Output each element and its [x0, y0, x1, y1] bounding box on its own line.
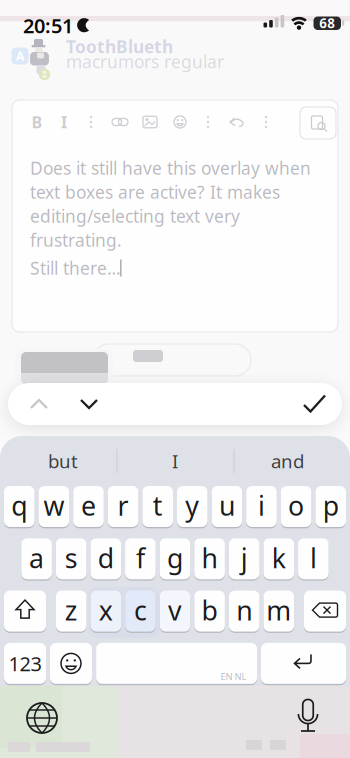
- staticText: frustrating.: [30, 228, 122, 251]
- button[interactable]: EN NL: [96, 642, 257, 685]
- button[interactable]: [50, 642, 92, 685]
- button[interactable]: I: [53, 111, 75, 133]
- button[interactable]: I: [125, 446, 225, 476]
- staticText: u: [219, 488, 235, 523]
- button[interactable]: [300, 107, 336, 139]
- button[interactable]: t: [142, 485, 173, 528]
- staticText: b: [202, 592, 218, 628]
- staticText: s: [65, 540, 78, 575]
- staticText: h: [202, 540, 218, 575]
- button[interactable]: s: [56, 537, 86, 580]
- staticText: Does it still have this overlay when: [30, 156, 311, 179]
- staticText: ToothBlueth: [66, 35, 173, 58]
- button[interactable]: [77, 392, 101, 416]
- staticText: v: [168, 592, 182, 628]
- button[interactable]: 123: [4, 642, 46, 685]
- staticText: t: [153, 488, 163, 523]
- button[interactable]: k: [263, 537, 294, 580]
- button[interactable]: [304, 590, 346, 633]
- button[interactable]: b: [194, 590, 225, 633]
- button[interactable]: v: [160, 590, 190, 633]
- button[interactable]: [286, 694, 330, 738]
- staticText: 68: [319, 14, 335, 32]
- staticText: e: [81, 488, 96, 523]
- staticText: x: [99, 592, 113, 628]
- button[interactable]: f: [125, 537, 156, 580]
- staticText: but: [48, 449, 78, 473]
- staticText: n: [236, 592, 252, 628]
- staticText: 123: [8, 650, 41, 677]
- button[interactable]: l: [298, 537, 329, 580]
- button[interactable]: q: [4, 485, 35, 528]
- button[interactable]: [140, 112, 160, 132]
- staticText: 20:51: [23, 12, 73, 39]
- button[interactable]: c: [125, 590, 156, 633]
- staticText: B: [31, 111, 42, 133]
- staticText: l: [310, 540, 317, 575]
- button[interactable]: d: [90, 537, 121, 580]
- button[interactable]: m: [263, 590, 294, 633]
- button[interactable]: u: [212, 485, 242, 528]
- button[interactable]: but: [13, 446, 113, 476]
- button[interactable]: [20, 696, 64, 740]
- staticText: d: [98, 540, 114, 575]
- button[interactable]: and: [237, 446, 337, 476]
- button[interactable]: [110, 112, 130, 132]
- staticText: editing/selecting text very: [30, 204, 240, 227]
- button[interactable]: h: [194, 537, 225, 580]
- button[interactable]: y: [177, 485, 208, 528]
- button[interactable]: x: [90, 590, 121, 633]
- staticText: j: [241, 540, 248, 575]
- button[interactable]: e: [73, 485, 104, 528]
- button[interactable]: o: [281, 485, 311, 528]
- button[interactable]: [170, 112, 190, 132]
- button[interactable]: r: [108, 485, 138, 528]
- button[interactable]: [4, 590, 46, 633]
- staticText: A: [16, 48, 24, 64]
- staticText: g: [167, 540, 183, 575]
- staticText: a: [29, 540, 44, 575]
- staticText: macrumors regular: [66, 50, 224, 73]
- staticText: i: [258, 488, 265, 523]
- staticText: y: [185, 488, 199, 523]
- button[interactable]: [227, 112, 247, 132]
- button[interactable]: w: [39, 485, 69, 528]
- staticText: EN NL: [221, 670, 247, 683]
- button[interactable]: n: [229, 590, 259, 633]
- button[interactable]: i: [246, 485, 277, 528]
- button[interactable]: [261, 642, 346, 685]
- staticText: c: [134, 592, 147, 628]
- staticText: m: [266, 592, 291, 628]
- button[interactable]: g: [160, 537, 190, 580]
- button[interactable]: z: [56, 590, 86, 633]
- button[interactable]: j: [229, 537, 259, 580]
- staticText: w: [43, 488, 64, 523]
- button[interactable]: B: [26, 111, 48, 133]
- staticText: p: [323, 488, 339, 523]
- staticText: o: [288, 488, 304, 523]
- staticText: and: [271, 449, 304, 473]
- staticText: r: [118, 488, 129, 523]
- staticText: I: [172, 449, 178, 473]
- staticText: q: [11, 488, 27, 523]
- staticText: text boxes are active? It makes: [30, 180, 280, 203]
- button[interactable]: [300, 392, 329, 415]
- staticText: Still there…: [30, 256, 121, 279]
- staticText: I: [61, 111, 67, 133]
- staticText: f: [136, 540, 145, 575]
- button[interactable]: [27, 392, 51, 416]
- staticText: k: [272, 540, 286, 575]
- staticText: z: [65, 592, 78, 628]
- button[interactable]: p: [315, 485, 346, 528]
- button[interactable]: a: [21, 537, 52, 580]
